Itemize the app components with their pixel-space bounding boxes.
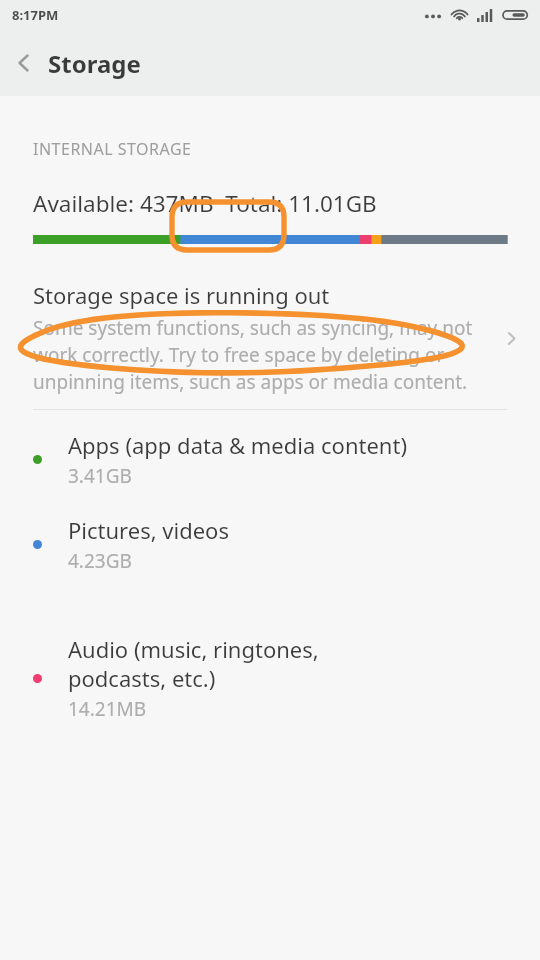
staticText: 4.23GB — [68, 548, 132, 574]
other: More details — [498, 325, 524, 351]
staticText: Some system functions, such as syncing, … — [33, 315, 494, 395]
staticText: 8:17PM — [12, 6, 59, 24]
button[interactable]: Back — [0, 39, 48, 87]
staticText: Available: 437MB Total: 11.01GB — [33, 188, 377, 219]
button[interactable]: Pictures, videos — [0, 515, 540, 574]
staticText: Storage — [48, 47, 141, 80]
staticText: Audio (music, ringtones, podcasts, etc.) — [68, 634, 420, 693]
staticText: 3.41GB — [68, 463, 132, 489]
button[interactable]: Storage space is running out — [0, 280, 540, 395]
staticText: Pictures, videos — [68, 515, 229, 545]
button[interactable]: Audio (music, ringtones, podcasts, etc.) — [0, 634, 540, 722]
staticText: Apps (app data & media content) — [68, 430, 407, 460]
staticText: Storage space is running out — [33, 280, 330, 310]
staticText: INTERNAL STORAGE — [33, 138, 192, 160]
staticText: 14.21MB — [68, 696, 147, 722]
button[interactable]: Apps (app data & media content) — [0, 430, 540, 489]
